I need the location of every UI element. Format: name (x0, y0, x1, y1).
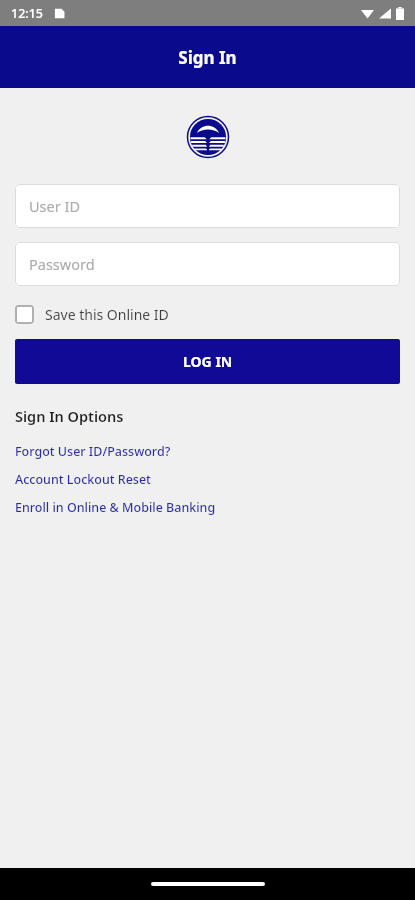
staticText: Password (29, 254, 95, 274)
button[interactable]: Account Lockout Reset (0, 465, 415, 493)
button[interactable]: Forgot User ID/Password? (0, 437, 415, 465)
button[interactable]: Save this Online ID (15, 305, 400, 324)
button[interactable]: User ID (15, 184, 400, 228)
staticText: Sign In Options (15, 406, 124, 426)
staticText: Account Lockout Reset (15, 471, 151, 488)
staticText: 12:15 (11, 5, 44, 22)
button[interactable]: LOG IN (15, 339, 400, 384)
staticText: Save this Online ID (45, 305, 169, 324)
staticText: LOG IN (183, 352, 233, 371)
button[interactable]: Password (15, 242, 400, 286)
staticText: Sign In (178, 46, 237, 69)
button[interactable]: Enroll in Online & Mobile Banking (0, 493, 415, 521)
staticText: Enroll in Online & Mobile Banking (15, 499, 216, 516)
other: Home gesture bar (151, 882, 265, 886)
staticText: User ID (29, 196, 80, 216)
staticText: Forgot User ID/Password? (15, 443, 171, 460)
